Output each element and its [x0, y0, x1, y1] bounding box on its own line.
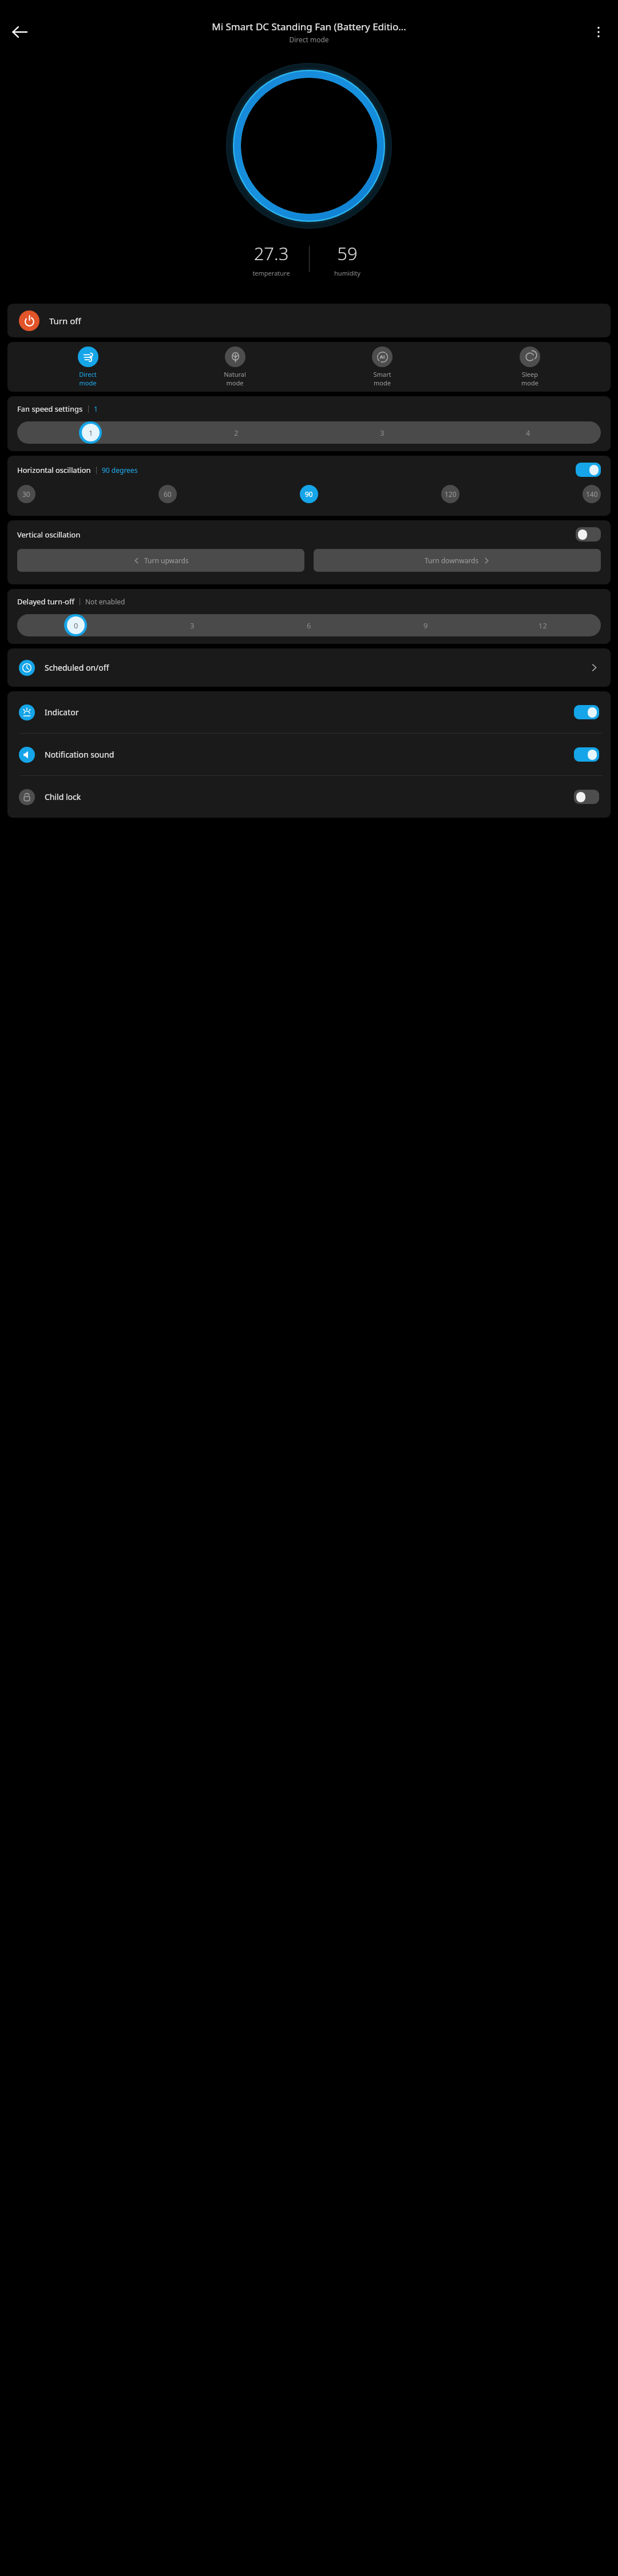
button[interactable]: 120	[441, 485, 459, 503]
staticText: Direct	[14, 370, 161, 379]
staticText: Turn upwards	[144, 556, 189, 565]
staticText: 1	[94, 404, 98, 413]
staticText: 90 degrees	[102, 465, 138, 475]
staticText: 12	[538, 620, 547, 631]
staticText: Turn off	[49, 315, 81, 327]
staticText: 0	[74, 620, 78, 631]
staticText: Direct mode	[35, 35, 583, 44]
staticText: Mi Smart DC Standing Fan (Battery Editio…	[35, 20, 583, 33]
staticText: Not enabled	[85, 597, 125, 606]
staticText: mode	[308, 379, 456, 387]
staticText: mode	[14, 379, 161, 387]
staticText: Vertical oscillation	[17, 529, 81, 540]
staticText: 3	[190, 620, 195, 631]
staticText: Child lock	[45, 791, 81, 802]
staticText: Horizontal oscillation	[17, 465, 91, 475]
button[interactable]: Vertical oscillation toggle	[576, 527, 601, 542]
button[interactable]: More options	[584, 17, 613, 47]
staticText: 30	[22, 489, 30, 499]
staticText: 6	[307, 620, 311, 631]
staticText: 90	[305, 489, 313, 499]
staticText: 140	[586, 489, 598, 499]
staticText: Indicator	[45, 707, 79, 718]
button[interactable]: Sleep	[456, 347, 604, 387]
staticText: 27.3	[233, 241, 309, 265]
button[interactable]: 60	[159, 485, 177, 503]
staticText: Natural	[161, 370, 308, 379]
staticText: 59	[310, 241, 385, 265]
button[interactable]: Notification sound toggle	[574, 747, 599, 762]
button[interactable]: Indicator	[7, 691, 611, 733]
button[interactable]: Turn upwards	[17, 549, 304, 572]
button[interactable]: Child lock toggle	[574, 790, 599, 804]
staticText: humidity	[310, 269, 385, 277]
staticText: 120	[445, 489, 457, 499]
button[interactable]	[17, 421, 601, 444]
button[interactable]: 30	[17, 485, 35, 503]
staticText: Sleep	[456, 370, 604, 379]
staticText: Notification sound	[45, 749, 114, 760]
staticText: Delayed turn-off	[17, 596, 74, 607]
staticText: 3	[380, 428, 385, 438]
staticText: Fan speed settings	[17, 404, 83, 414]
button[interactable]: Child lock	[7, 776, 611, 818]
staticText: mode	[456, 379, 604, 387]
staticText: 4	[526, 428, 530, 438]
staticText: 2	[234, 428, 239, 438]
button[interactable]: Notification sound	[7, 734, 611, 775]
button[interactable]: Direct	[14, 347, 161, 387]
button[interactable]	[17, 614, 601, 636]
staticText: 1	[89, 428, 93, 438]
button[interactable]: Turn downwards	[314, 549, 601, 572]
button[interactable]: 90	[300, 485, 318, 503]
button[interactable]: Horizontal oscillation toggle	[576, 463, 601, 477]
staticText: Scheduled on/off	[45, 662, 109, 673]
staticText: 60	[164, 489, 172, 499]
staticText: mode	[161, 379, 308, 387]
button[interactable]: Scheduled on/off	[7, 648, 611, 687]
staticText: Smart	[308, 370, 456, 379]
button[interactable]: Smart	[308, 347, 456, 387]
staticText: Turn downwards	[425, 556, 479, 565]
button[interactable]: Indicator toggle	[574, 705, 599, 719]
button[interactable]: Turn off	[7, 304, 611, 337]
staticText: 9	[423, 620, 428, 631]
staticText: temperature	[233, 269, 309, 277]
button[interactable]: 140	[583, 485, 601, 503]
button[interactable]: Back	[3, 16, 35, 48]
button[interactable]: Natural	[161, 347, 308, 387]
